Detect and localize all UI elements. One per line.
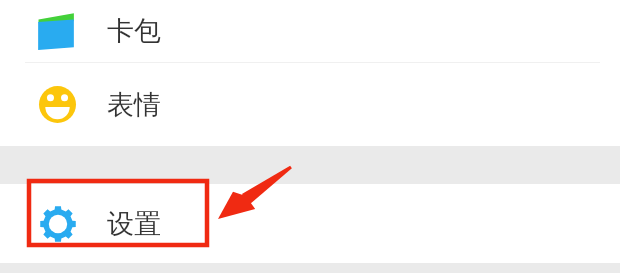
staticText: 表情 bbox=[107, 88, 161, 122]
staticText: 卡包 bbox=[107, 14, 161, 48]
staticText: 设置 bbox=[107, 207, 161, 241]
button[interactable]: 卡包 bbox=[0, 0, 620, 62]
button[interactable]: 设置 bbox=[0, 184, 620, 263]
button[interactable]: 表情 bbox=[0, 63, 620, 146]
